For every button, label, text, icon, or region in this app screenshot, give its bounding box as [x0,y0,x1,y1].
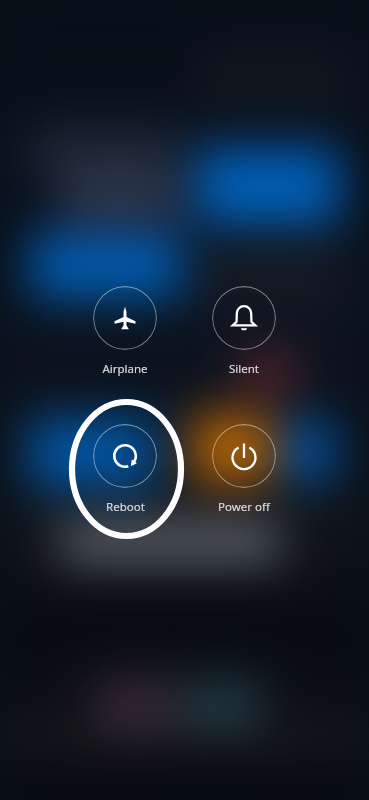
staticText: Reboot [106,499,145,515]
button[interactable]: Airplane [70,282,180,392]
button[interactable]: Silent [189,282,299,392]
staticText: Airplane [102,361,148,377]
button[interactable]: Power off [189,420,299,530]
staticText: Silent [229,361,259,377]
button[interactable]: Reboot [70,420,180,530]
staticText: Power off [218,499,270,515]
